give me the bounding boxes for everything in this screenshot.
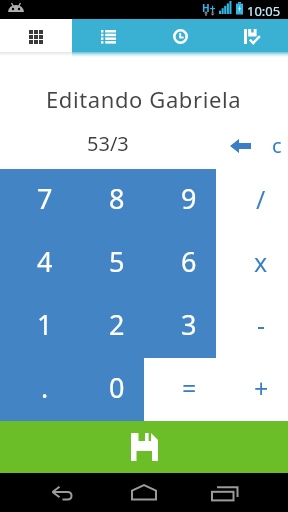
button[interactable]: /	[216, 169, 288, 232]
button[interactable]: 6	[144, 232, 216, 295]
button[interactable]: c	[266, 132, 288, 156]
button[interactable]	[131, 484, 157, 502]
button[interactable]	[226, 135, 256, 157]
staticText: 53/3	[87, 130, 129, 157]
button[interactable]: 7	[0, 169, 72, 232]
staticText: 8	[109, 180, 125, 217]
staticText: 0	[109, 369, 125, 406]
button[interactable]: 8	[72, 169, 144, 232]
staticText: c	[272, 132, 282, 156]
button[interactable]: 0	[72, 358, 144, 421]
button[interactable]	[210, 485, 238, 501]
staticText: -	[257, 308, 266, 342]
button[interactable]: +	[216, 358, 288, 421]
button[interactable]: x	[216, 232, 288, 295]
staticText: 10:05	[247, 2, 281, 20]
button[interactable]: 1	[0, 295, 72, 358]
button[interactable]: 3	[144, 295, 216, 358]
button[interactable]	[48, 483, 72, 507]
staticText: 9	[181, 180, 197, 217]
button[interactable]: .	[0, 358, 72, 421]
staticText: 2	[109, 306, 125, 343]
button[interactable]: -	[216, 295, 288, 358]
staticText: 6	[181, 243, 197, 280]
staticText: =	[182, 371, 197, 405]
staticText: 4	[37, 243, 53, 280]
button[interactable]: 5	[72, 232, 144, 295]
button[interactable]	[72, 19, 144, 52]
staticText: Editando Gabriela	[46, 84, 242, 114]
button[interactable]: =	[144, 358, 216, 421]
staticText: /	[256, 182, 266, 216]
button[interactable]	[0, 421, 288, 473]
button[interactable]: 9	[144, 169, 216, 232]
staticText: 5	[109, 243, 125, 280]
staticText: 7	[37, 180, 53, 217]
button[interactable]: 4	[0, 232, 72, 295]
button[interactable]	[0, 19, 72, 52]
staticText: .	[41, 369, 49, 406]
staticText: 3	[181, 306, 197, 343]
button[interactable]	[144, 19, 216, 52]
button[interactable]	[216, 19, 288, 52]
staticText: H+	[202, 1, 216, 15]
staticText: 1	[37, 306, 53, 343]
button[interactable]: 2	[72, 295, 144, 358]
staticText: x	[254, 245, 268, 279]
staticText: +	[254, 371, 269, 405]
